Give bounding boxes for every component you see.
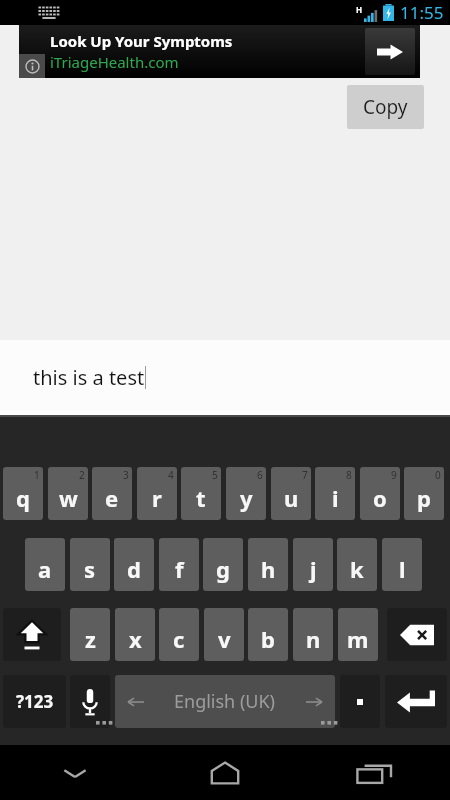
button[interactable]: n [293,608,333,661]
staticText: j [310,554,317,584]
staticText: Look Up Your Symptoms [50,31,233,51]
staticText: i [332,483,339,513]
staticText: H [356,4,363,15]
button[interactable]: e [92,467,132,520]
button[interactable]: m [338,608,378,661]
button[interactable]: a [25,538,65,591]
button[interactable]: Backspace [387,608,447,661]
button[interactable]: g [203,538,243,591]
button[interactable]: Open ad [365,28,415,75]
staticText: Copy [363,94,408,120]
staticText: s [84,554,96,584]
button[interactable]: Look Up Your Symptoms [19,25,420,78]
button[interactable]: z [70,608,110,661]
staticText: n [306,624,321,654]
staticText: English (UK) [174,689,276,714]
button[interactable]: v [204,608,244,661]
button[interactable]: Recent apps [300,745,450,800]
staticText: 0 [435,468,441,482]
staticText: d [127,554,141,584]
staticText: l [399,554,406,584]
staticText: 8 [346,468,352,482]
button[interactable]: Ad info [19,54,45,78]
button[interactable]: t [181,467,221,520]
button[interactable]: j [293,538,333,591]
staticText: z [85,624,96,654]
staticText: 7 [302,468,308,482]
staticText: y [240,483,253,513]
button[interactable]: q [3,467,43,520]
button[interactable]: this is a test [0,340,450,415]
button[interactable]: h [248,538,288,591]
staticText: 4 [168,468,174,482]
button[interactable]: p [404,467,444,520]
staticText: g [216,554,230,584]
staticText: m [347,624,369,654]
button[interactable]: c [159,608,199,661]
button[interactable]: d [114,538,154,591]
button[interactable]: w [48,467,88,520]
staticText: f [175,554,184,584]
staticText: ?123 [16,690,54,713]
button[interactable]: b [248,608,288,661]
staticText: u [284,483,299,513]
button[interactable]: Shift [3,608,61,661]
staticText: a [38,554,52,584]
button[interactable]: f [159,538,199,591]
button[interactable]: k [337,538,377,591]
button[interactable]: Copy [347,85,424,129]
button[interactable]: l [382,538,422,591]
button[interactable]: Voice input [70,675,110,728]
button[interactable]: Period [340,675,380,728]
button[interactable]: u [271,467,311,520]
button[interactable]: Back [0,745,150,800]
button[interactable]: Enter [385,675,447,728]
staticText: t [196,483,206,513]
button[interactable]: Space, English (UK) [115,675,335,728]
button[interactable]: s [70,538,110,591]
staticText: 6 [257,468,263,482]
button[interactable]: o [360,467,400,520]
staticText: r [152,483,162,513]
staticText: q [16,483,30,513]
button[interactable]: x [115,608,155,661]
staticText: e [105,483,119,513]
staticText: v [218,624,231,654]
staticText: h [261,554,276,584]
staticText: 9 [391,468,397,482]
staticText: c [173,624,185,654]
button[interactable]: i [315,467,355,520]
staticText: b [261,624,275,654]
staticText: 3 [123,468,129,482]
button[interactable]: y [226,467,266,520]
staticText: k [350,554,364,584]
button[interactable]: Home [150,745,300,800]
staticText: w [59,483,78,513]
staticText: 5 [212,468,218,482]
staticText: 2 [79,468,85,482]
button[interactable]: r [137,467,177,520]
staticText: x [129,624,142,654]
staticText: p [417,483,431,513]
staticText: 11:55 [400,1,444,24]
staticText: 1 [34,468,40,482]
staticText: o [373,483,387,513]
button[interactable]: Symbols [3,675,66,728]
staticText: this is a test [33,364,145,391]
staticText: iTriageHealth.com [50,52,179,72]
